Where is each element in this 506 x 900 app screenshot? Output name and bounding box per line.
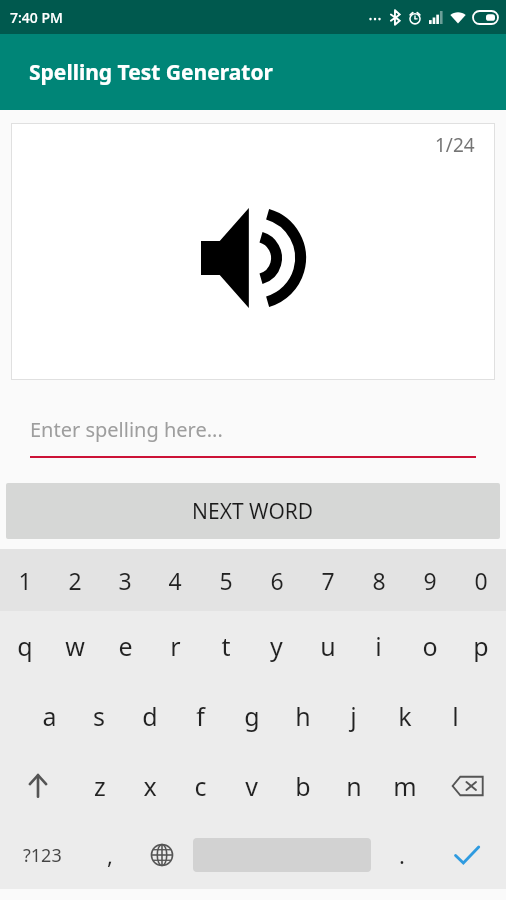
staticText: o	[422, 629, 438, 663]
button[interactable]: v	[226, 751, 277, 821]
staticText: Spelling Test Generator	[29, 58, 273, 87]
button[interactable]: 4	[150, 549, 200, 611]
staticText: d	[142, 699, 158, 733]
button[interactable]: y	[251, 611, 302, 681]
button[interactable]: 7	[302, 549, 353, 611]
staticText: 7	[321, 565, 335, 596]
button[interactable]: r	[150, 611, 200, 681]
staticText: u	[320, 629, 336, 663]
button[interactable]: 9	[404, 549, 455, 611]
staticText: 2	[68, 565, 82, 596]
button[interactable]: n	[328, 751, 379, 821]
staticText: v	[245, 769, 258, 803]
staticText: h	[295, 699, 311, 733]
staticText: x	[143, 769, 157, 803]
button[interactable]: Enter	[428, 821, 506, 889]
staticText: g	[244, 699, 260, 733]
button[interactable]: e	[100, 611, 150, 681]
button[interactable]: 3	[100, 549, 150, 611]
staticText: 4	[168, 565, 182, 596]
staticText: Enter spelling here...	[30, 416, 223, 443]
staticText: 3	[118, 565, 132, 596]
staticText: s	[93, 699, 105, 733]
button[interactable]: m	[379, 751, 430, 821]
button[interactable]: NEXT WORD	[6, 483, 500, 539]
button[interactable]: Play word audio	[201, 208, 305, 308]
button[interactable]: p	[455, 611, 506, 681]
staticText: w	[65, 629, 85, 663]
button[interactable]: w	[50, 611, 100, 681]
button[interactable]: k	[379, 681, 430, 751]
button[interactable]: 8	[353, 549, 404, 611]
button[interactable]: h	[277, 681, 328, 751]
button[interactable]: g	[226, 681, 277, 751]
button[interactable]: ?123	[0, 821, 84, 889]
button[interactable]: i	[353, 611, 404, 681]
button[interactable]: 1	[0, 549, 50, 611]
staticText: ?123	[23, 843, 62, 868]
staticText: y	[270, 629, 283, 663]
staticText: 0	[474, 565, 488, 596]
button[interactable]: Change language	[136, 821, 188, 889]
staticText: 5	[219, 565, 233, 596]
button[interactable]: Backspace	[430, 751, 506, 821]
button[interactable]: 1/24	[11, 123, 495, 380]
button[interactable]: 2	[50, 549, 100, 611]
staticText: e	[118, 629, 133, 663]
button[interactable]: d	[124, 681, 175, 751]
staticText: i	[375, 629, 382, 663]
button[interactable]: Enter spelling here...	[30, 406, 476, 458]
staticText: t	[221, 629, 231, 663]
staticText: 8	[372, 565, 386, 596]
button[interactable]: o	[404, 611, 455, 681]
button[interactable]: 0	[455, 549, 506, 611]
staticText: 1/24	[435, 132, 475, 158]
button[interactable]: Shift	[0, 751, 75, 821]
staticText: .	[399, 840, 405, 870]
button[interactable]: ,	[84, 821, 136, 889]
button[interactable]: 5	[200, 549, 251, 611]
staticText: a	[42, 699, 57, 733]
staticText: k	[398, 699, 412, 733]
button[interactable]: j	[328, 681, 379, 751]
staticText: 9	[423, 565, 437, 596]
staticText: c	[194, 769, 207, 803]
button[interactable]: a	[24, 681, 74, 751]
button[interactable]: u	[302, 611, 353, 681]
staticText: r	[170, 629, 181, 663]
button[interactable]: x	[125, 751, 175, 821]
staticText: NEXT WORD	[192, 497, 314, 526]
staticText: l	[452, 699, 459, 733]
staticText: f	[196, 699, 205, 733]
button[interactable]: c	[175, 751, 226, 821]
staticText: n	[346, 769, 362, 803]
button[interactable]: .	[376, 821, 428, 889]
button[interactable]: t	[200, 611, 251, 681]
staticText: ,	[107, 840, 113, 870]
staticText: 7:40 PM	[10, 8, 63, 27]
button[interactable]: q	[0, 611, 50, 681]
button[interactable]: z	[75, 751, 125, 821]
staticText: 1	[18, 565, 32, 596]
button[interactable]: l	[430, 681, 481, 751]
staticText: m	[393, 769, 417, 803]
staticText: z	[94, 769, 106, 803]
staticText: p	[473, 629, 489, 663]
button[interactable]: s	[74, 681, 124, 751]
staticText: q	[17, 629, 33, 663]
staticText: j	[350, 699, 357, 733]
button[interactable]: b	[277, 751, 328, 821]
staticText: b	[295, 769, 311, 803]
staticText: 6	[270, 565, 284, 596]
button[interactable]: 6	[251, 549, 302, 611]
button[interactable]: f	[175, 681, 226, 751]
